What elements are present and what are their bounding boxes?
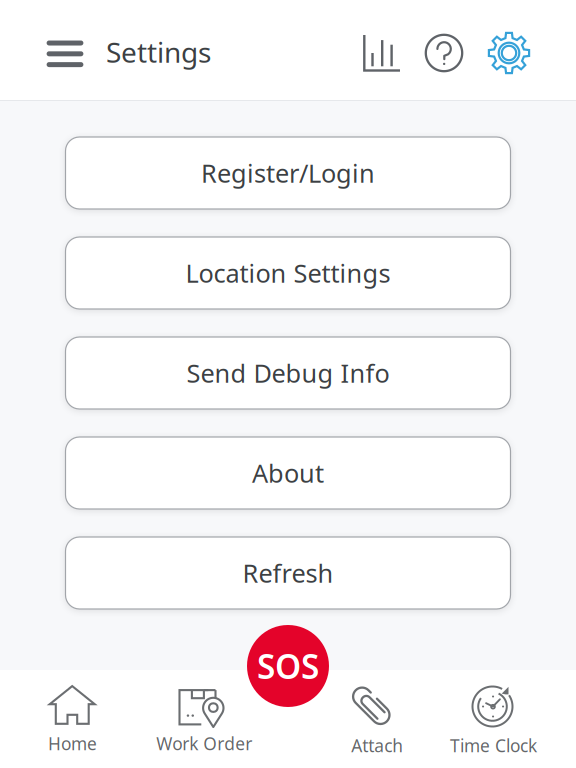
staticText: Register/Login — [201, 156, 375, 190]
button[interactable]: Work Order — [132, 670, 277, 768]
button[interactable]: About — [65, 437, 510, 509]
staticText: Location Settings — [185, 256, 390, 290]
staticText: About — [252, 456, 324, 490]
button[interactable]: Time Clock — [421, 670, 566, 768]
button[interactable]: Menu — [38, 15, 92, 85]
staticText: Refresh — [242, 556, 333, 590]
staticText: Send Debug Info — [186, 356, 389, 390]
button[interactable]: Send Debug Info — [65, 337, 510, 409]
button[interactable]: Help — [417, 15, 475, 85]
staticText: Settings — [106, 33, 211, 71]
button[interactable]: Settings — [480, 15, 538, 85]
button[interactable]: Refresh — [65, 537, 510, 609]
staticText: Home — [48, 732, 97, 755]
button[interactable]: SOS — [247, 625, 329, 707]
staticText: Time Clock — [450, 734, 537, 757]
button[interactable]: Location Settings — [65, 237, 510, 309]
button[interactable]: Attach — [305, 670, 450, 768]
staticText: Attach — [351, 734, 403, 757]
staticText: SOS — [257, 644, 319, 688]
button[interactable]: Reports — [353, 15, 411, 85]
button[interactable]: Register/Login — [65, 137, 510, 209]
staticText: Work Order — [156, 732, 252, 755]
button[interactable]: Home — [0, 670, 145, 768]
